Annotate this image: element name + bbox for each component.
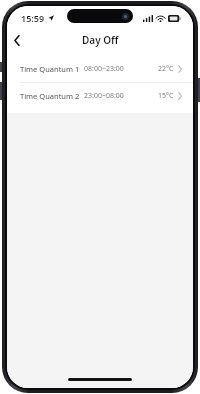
- staticText: 23:00~08:00: [84, 91, 124, 101]
- staticText: 08:00~23:00: [84, 64, 124, 74]
- button[interactable]: Time Quantum 2: [7, 83, 193, 109]
- staticText: 15°C: [158, 91, 174, 101]
- staticText: 22°C: [158, 64, 174, 74]
- button[interactable]: Time Quantum 1: [7, 56, 193, 82]
- staticText: Time Quantum 2: [20, 91, 80, 101]
- button[interactable]: Back: [7, 30, 27, 50]
- staticText: 15:59: [21, 12, 45, 24]
- staticText: Time Quantum 1: [20, 64, 80, 74]
- staticText: Day Off: [82, 33, 119, 47]
